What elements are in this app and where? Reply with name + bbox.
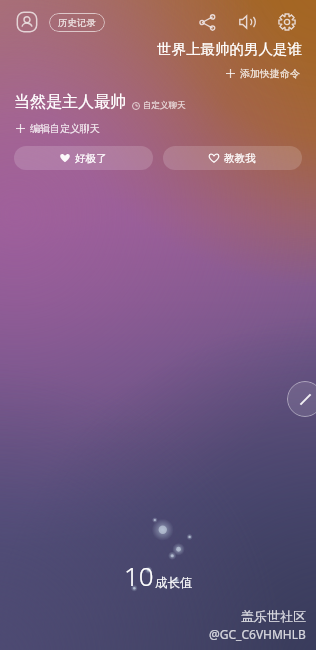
staticText: 成长值 <box>155 575 193 591</box>
staticText: 教教我 <box>224 152 256 165</box>
staticText: 编辑自定义聊天 <box>30 122 100 135</box>
staticText: 自定义聊天 <box>143 100 186 111</box>
button[interactable]: Share <box>192 7 222 37</box>
button[interactable]: Profile <box>14 9 40 35</box>
staticText: 当然是主人最帅 <box>14 92 126 112</box>
button[interactable]: 教教我 <box>163 146 302 170</box>
staticText: 10 <box>124 558 154 593</box>
button[interactable]: Volume <box>232 7 262 37</box>
staticText: 好极了 <box>75 152 107 165</box>
button[interactable]: Settings <box>272 7 302 37</box>
staticText: 世界上最帅的男人是谁 <box>157 40 302 58</box>
button[interactable]: Edit <box>287 381 316 417</box>
staticText: 盖乐世社区 <box>241 608 306 624</box>
staticText: 添加快捷命令 <box>240 67 300 80</box>
button[interactable]: 10 <box>118 556 199 595</box>
button[interactable]: 历史记录 <box>49 13 105 32</box>
button[interactable]: 好极了 <box>14 146 153 170</box>
button[interactable]: 编辑自定义聊天 <box>14 121 102 136</box>
button[interactable]: 添加快捷命令 <box>224 66 302 81</box>
staticText: 历史记录 <box>58 17 96 29</box>
staticText: @GC_C6VHMHLB <box>209 626 306 642</box>
